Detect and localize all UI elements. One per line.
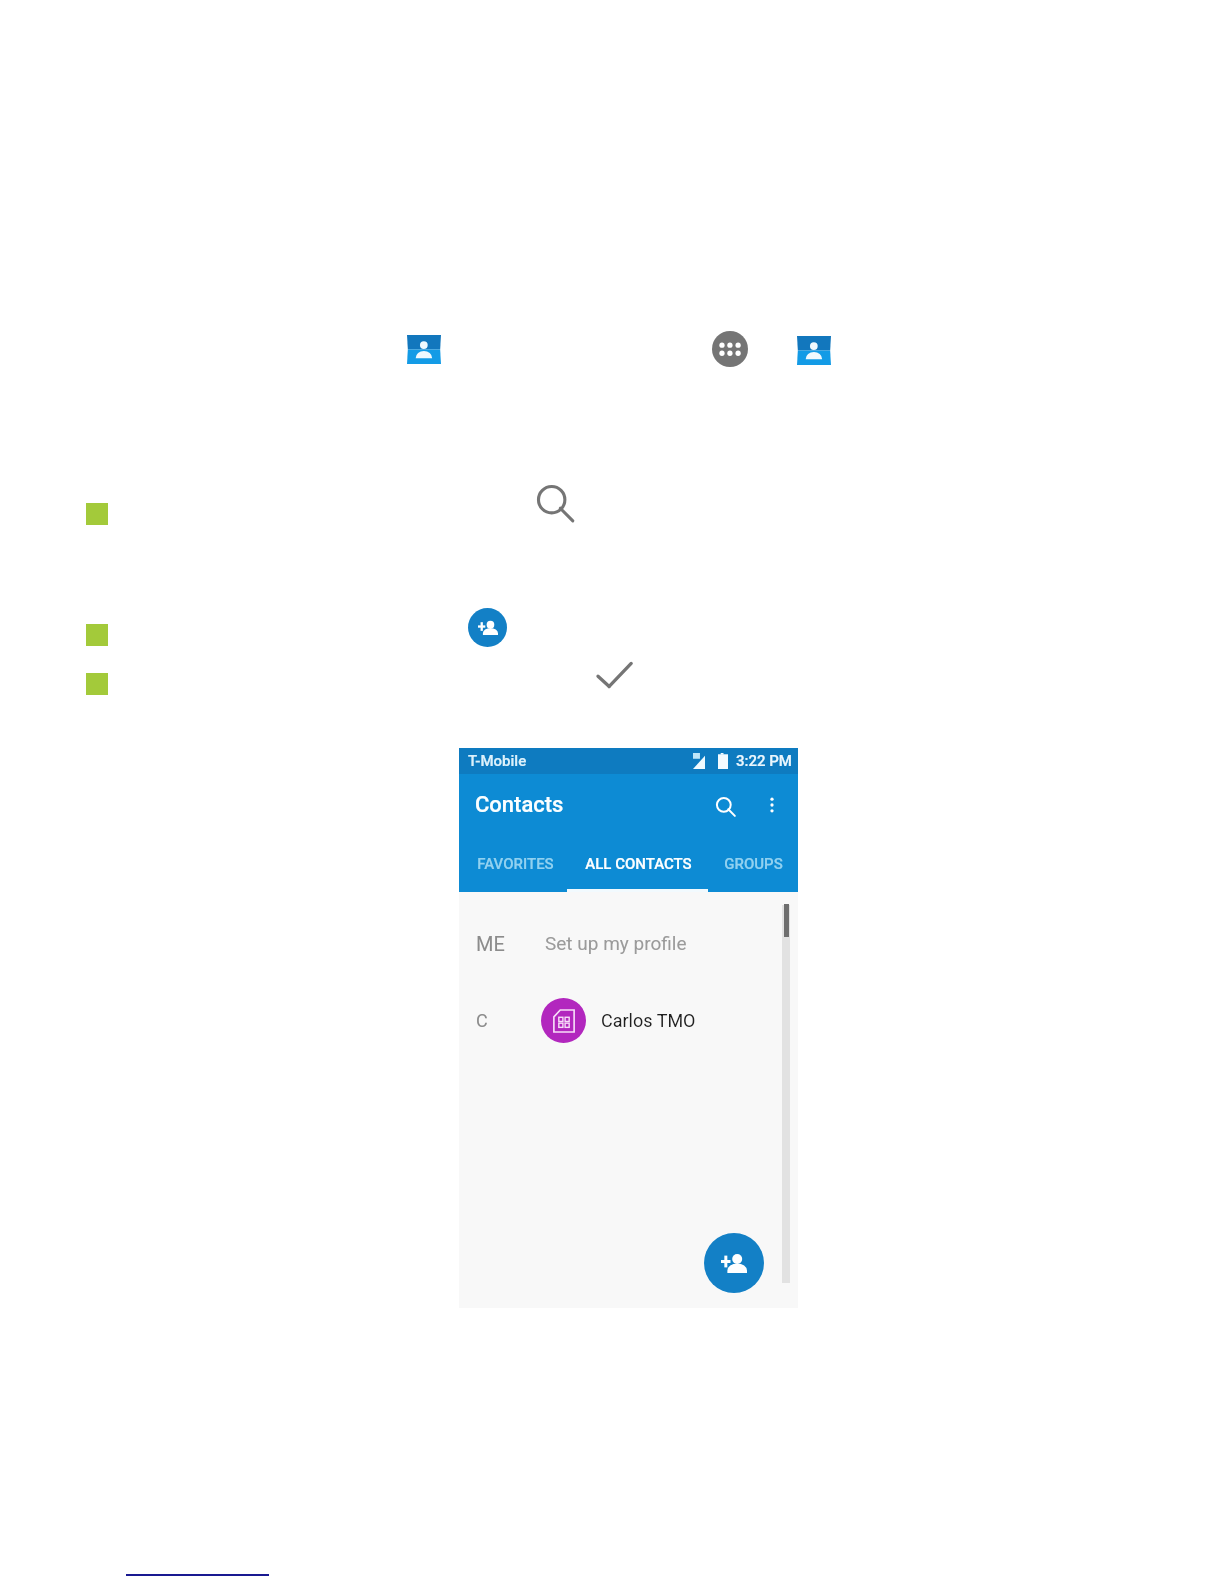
staticText: FAVORITES (477, 855, 554, 873)
staticText: Contacts (475, 792, 564, 818)
button[interactable]: Add contact (704, 1233, 764, 1293)
staticText: Set up my profile (545, 932, 687, 954)
staticText: ME (476, 932, 544, 955)
staticText: 3:22 PM (736, 752, 792, 770)
button[interactable]: Search (702, 783, 746, 827)
staticText: C (476, 1010, 541, 1031)
button[interactable]: ME (459, 920, 798, 966)
button[interactable]: More options (752, 785, 792, 825)
staticText: GROUPS (724, 855, 783, 873)
staticText: Carlos TMO (601, 1010, 696, 1031)
button[interactable]: ALL CONTACTS (582, 835, 694, 892)
button[interactable]: C (459, 989, 798, 1051)
button[interactable]: GROUPS (697, 835, 809, 892)
button[interactable]: FAVORITES (459, 835, 571, 892)
staticText: ALL CONTACTS (585, 855, 692, 873)
staticText: T-Mobile (468, 752, 527, 770)
